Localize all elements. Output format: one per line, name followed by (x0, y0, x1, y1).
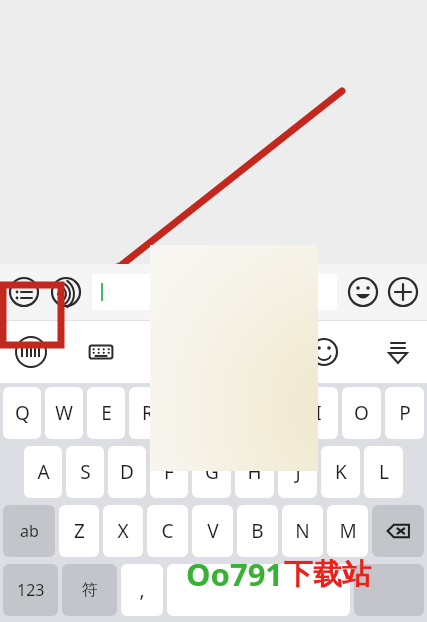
button[interactable]: I (299, 387, 338, 439)
button[interactable]: Collapse (383, 337, 413, 367)
staticText: ab (20, 520, 39, 542)
button[interactable]: M (327, 505, 368, 557)
button[interactable]: L (364, 446, 403, 498)
button[interactable]: P (385, 387, 424, 439)
button[interactable]: C (147, 505, 188, 557)
staticText: B (251, 518, 264, 544)
staticText: Z (74, 518, 85, 544)
staticText: , (139, 577, 145, 603)
button[interactable]: W (45, 387, 83, 439)
button[interactable]: R (129, 387, 167, 439)
button[interactable]: A (24, 446, 62, 498)
staticText: L (379, 459, 389, 485)
staticText: W (55, 400, 73, 426)
button[interactable] (167, 564, 350, 616)
button[interactable]: D (108, 446, 146, 498)
staticText: J (295, 459, 301, 485)
button[interactable]: Sticker (309, 337, 339, 367)
staticText: Oo791 (186, 553, 284, 595)
staticText: 下载站 (284, 556, 371, 593)
button[interactable] (354, 564, 424, 616)
button[interactable]: Q (3, 387, 41, 439)
staticText: F (164, 459, 174, 485)
button[interactable]: F (150, 446, 188, 498)
staticText: 符 (82, 580, 98, 600)
staticText: K (335, 459, 347, 485)
staticText: C (161, 518, 174, 544)
button[interactable]: Backspace (372, 505, 424, 557)
staticText: E (101, 400, 112, 426)
button[interactable]: 123 (3, 564, 58, 616)
button[interactable]: E (87, 387, 125, 439)
button[interactable] (92, 274, 337, 310)
button[interactable]: ab (3, 505, 55, 557)
staticText: G (205, 459, 219, 485)
button[interactable]: O (342, 387, 381, 439)
button[interactable]: Emoji (347, 276, 379, 308)
button[interactable]: X (103, 505, 143, 557)
button[interactable]: K (321, 446, 360, 498)
staticText: S (80, 459, 91, 485)
staticText: A (37, 459, 50, 485)
staticText: R (142, 400, 154, 426)
button[interactable]: S (66, 446, 104, 498)
button[interactable]: J (278, 446, 317, 498)
staticText: N (295, 518, 310, 544)
button[interactable]: , (121, 564, 163, 616)
button[interactable]: V (192, 505, 233, 557)
button[interactable]: IME (14, 335, 48, 369)
staticText: X (117, 518, 129, 544)
button[interactable]: B (237, 505, 278, 557)
button[interactable]: H (235, 446, 274, 498)
button[interactable]: Menu (8, 276, 40, 308)
staticText: P (399, 400, 411, 426)
staticText: D (120, 459, 134, 485)
button[interactable]: Keyboard (86, 337, 116, 367)
button[interactable]: Voice input (50, 276, 82, 308)
button[interactable]: More (387, 276, 419, 308)
staticText: O (354, 400, 369, 426)
button[interactable]: G (192, 446, 231, 498)
staticText: 123 (17, 579, 45, 601)
staticText: H (247, 459, 262, 485)
staticText: V (207, 518, 219, 544)
button[interactable]: N (282, 505, 323, 557)
staticText: M (339, 518, 357, 544)
button[interactable]: Z (59, 505, 99, 557)
staticText: Q (15, 400, 30, 426)
staticText: I (315, 400, 322, 426)
button[interactable]: 符 (62, 564, 117, 616)
